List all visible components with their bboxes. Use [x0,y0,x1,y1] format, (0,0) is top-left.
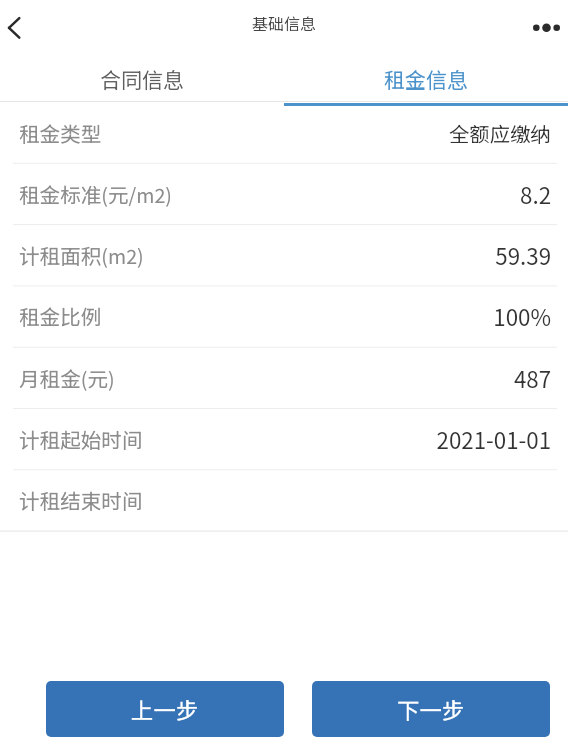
button[interactable]: 月租金(元) [0,347,568,408]
staticText: 487 [513,362,551,394]
button[interactable]: 租金信息 [284,54,568,103]
staticText: 租金类型 [19,118,102,148]
staticText: 租金比例 [19,301,102,331]
staticText: 全额应缴纳 [449,118,551,148]
staticText: 合同信息 [100,64,184,94]
staticText: 计租起始时间 [19,424,143,454]
staticText: 59.39 [495,239,551,271]
staticText: 计租面积(m2) [19,240,144,270]
button[interactable]: 租金类型 [0,102,568,163]
staticText: 上一步 [131,693,199,725]
button[interactable]: 计租面积(m2) [0,224,568,285]
staticText: 月租金(元) [19,363,115,393]
button[interactable]: 计租结束时间 [0,469,568,530]
button[interactable]: 租金标准(元/m2) [0,163,568,224]
staticText: 租金标准(元/m2) [19,179,172,209]
button[interactable]: More options [524,4,568,48]
button[interactable]: 租金比例 [0,285,568,346]
button[interactable]: 合同信息 [0,54,284,103]
staticText: 基础信息 [252,11,317,34]
button[interactable]: 上一步 [46,681,284,737]
staticText: 100% [493,300,551,332]
button[interactable]: 下一步 [312,681,550,737]
staticText: 8.2 [520,178,551,210]
staticText: 租金信息 [384,64,468,94]
button[interactable]: 计租起始时间 [0,408,568,469]
staticText: 下一步 [397,693,465,725]
button[interactable]: Back [0,4,44,48]
staticText: 2021-01-01 [436,423,551,455]
staticText: 计租结束时间 [19,485,143,515]
